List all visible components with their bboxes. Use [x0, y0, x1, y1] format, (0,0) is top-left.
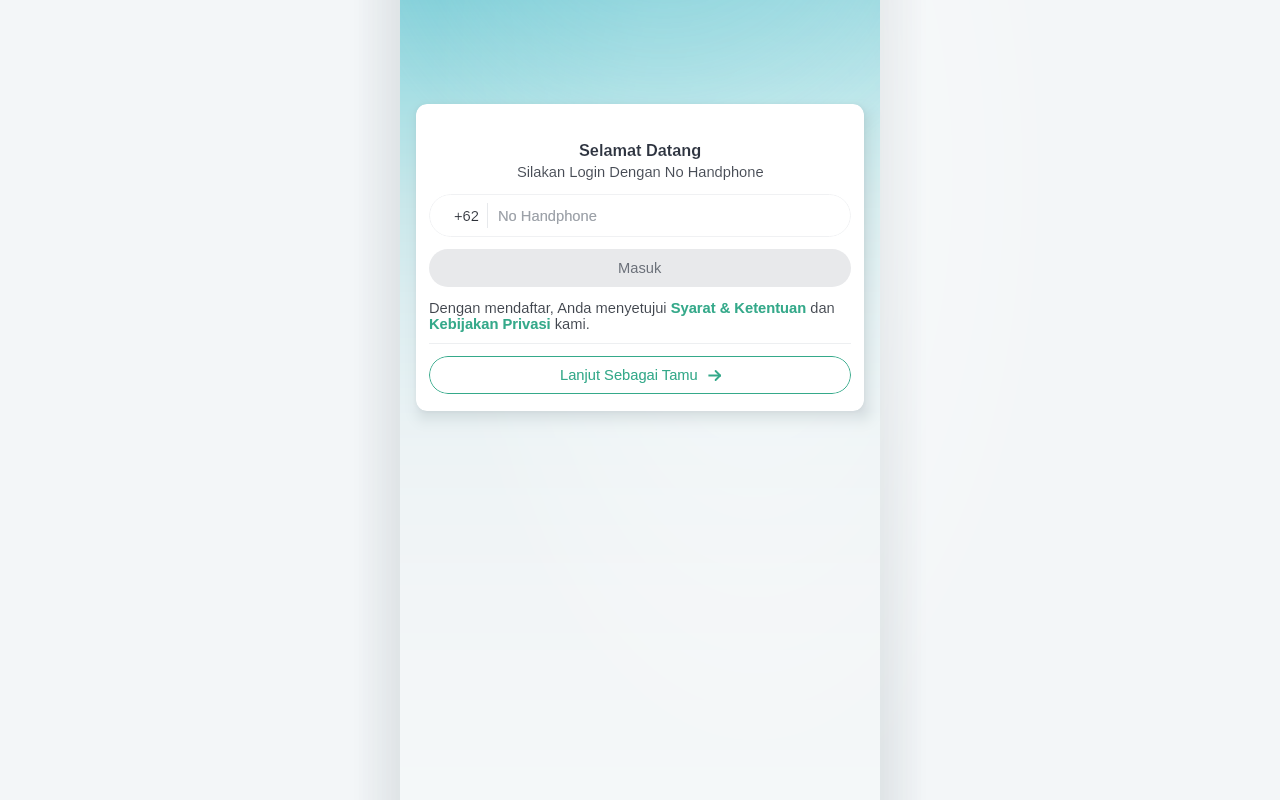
- staticText: Masuk: [618, 260, 662, 276]
- staticText: Selamat Datang: [579, 141, 702, 159]
- button[interactable]: Lanjut Sebagai Tamu: [429, 356, 851, 394]
- staticText: Dengan mendaftar, Anda menyetujui Syarat…: [429, 300, 851, 332]
- staticText: Lanjut Sebagai Tamu: [560, 367, 698, 383]
- staticText: No Handphone: [498, 208, 597, 224]
- staticText: Silakan Login Dengan No Handphone: [517, 164, 764, 180]
- button[interactable]: Masuk: [429, 249, 851, 287]
- staticText: +62: [454, 208, 479, 224]
- button[interactable]: +62: [429, 194, 851, 237]
